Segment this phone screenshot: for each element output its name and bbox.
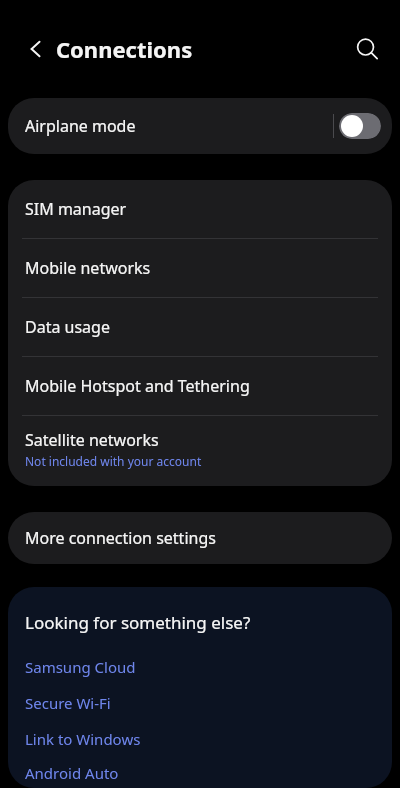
button[interactable]: Satellite networks	[8, 416, 392, 486]
staticText: Airplane mode	[25, 115, 136, 137]
staticText: Android Auto	[25, 763, 119, 783]
staticText: Mobile networks	[25, 257, 151, 279]
staticText: Looking for something else?	[25, 611, 251, 634]
button[interactable]: Samsung Cloud	[25, 649, 375, 685]
button[interactable]: Secure Wi-Fi	[25, 685, 375, 721]
staticText: Link to Windows	[25, 729, 141, 749]
staticText: Data usage	[25, 316, 110, 338]
button[interactable]: Mobile networks	[8, 239, 392, 297]
staticText: Satellite networks	[25, 429, 159, 451]
staticText: Connections	[56, 34, 193, 64]
staticText: Mobile Hotspot and Tethering	[25, 375, 250, 397]
button[interactable]: Search	[345, 27, 389, 71]
button[interactable]: Back	[14, 27, 58, 71]
button[interactable]: Link to Windows	[25, 721, 375, 757]
button[interactable]: Android Auto	[25, 757, 375, 788]
button[interactable]: Mobile Hotspot and Tethering	[8, 357, 392, 415]
button[interactable]: SIM manager	[8, 180, 392, 238]
staticText: Not included with your account	[25, 453, 202, 469]
staticText: More connection settings	[25, 527, 216, 549]
button[interactable]: More connection settings	[8, 512, 392, 564]
staticText: SIM manager	[25, 198, 127, 220]
staticText: Samsung Cloud	[25, 657, 136, 677]
button[interactable]: Data usage	[8, 298, 392, 356]
button[interactable]: Airplane mode toggle	[339, 113, 381, 139]
button[interactable]: Airplane mode	[8, 98, 392, 154]
staticText: Secure Wi-Fi	[25, 693, 111, 713]
